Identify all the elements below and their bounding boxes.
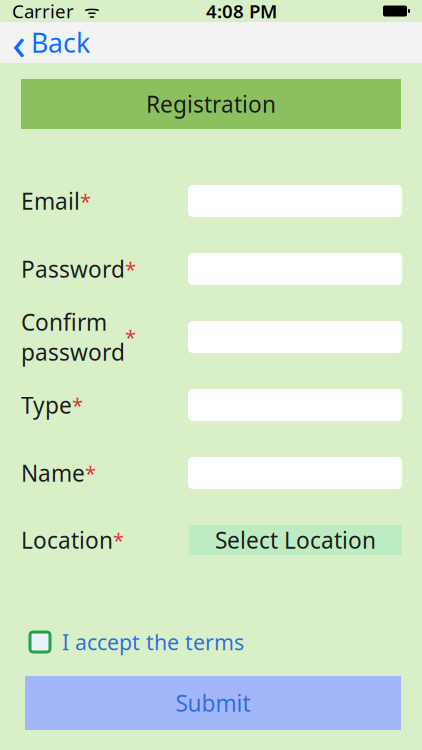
staticText: * xyxy=(113,527,124,553)
staticText: ‹ xyxy=(12,12,26,73)
staticText: Confirm password xyxy=(21,307,125,367)
staticText: Location xyxy=(21,525,113,555)
staticText: Registration xyxy=(146,89,276,119)
staticText: ᯤ xyxy=(74,0,100,22)
staticText: * xyxy=(125,256,136,282)
staticText: Password xyxy=(21,254,125,284)
staticText: Carrier xyxy=(12,0,74,23)
staticText: * xyxy=(72,392,83,418)
staticText: Back xyxy=(31,25,90,60)
staticText: Select Location xyxy=(215,525,376,555)
button[interactable]: ‹ xyxy=(0,22,102,62)
staticText: * xyxy=(125,324,136,350)
button[interactable]: I accept the terms xyxy=(30,628,244,656)
button[interactable]: Select Location xyxy=(189,525,402,555)
staticText: * xyxy=(85,460,96,486)
staticText: Name xyxy=(21,458,85,488)
staticText: Type xyxy=(21,390,72,420)
staticText: 4:08 PM xyxy=(206,0,277,23)
button[interactable]: Submit xyxy=(25,676,401,730)
staticText: Email xyxy=(21,186,80,216)
staticText: I accept the terms xyxy=(62,628,244,656)
staticText: Submit xyxy=(175,688,250,718)
staticText: * xyxy=(80,188,91,214)
